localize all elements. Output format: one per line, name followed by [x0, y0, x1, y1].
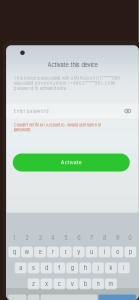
button[interactable]: 0 — [124, 233, 137, 242]
staticText: 6 — [77, 235, 80, 241]
staticText: 2 — [26, 235, 29, 241]
staticText: t — [65, 248, 67, 255]
button[interactable]: 6 — [72, 233, 85, 242]
button[interactable]: i — [99, 246, 110, 257]
staticText: f — [58, 264, 60, 271]
staticText: 4 — [51, 235, 55, 241]
staticText: b — [84, 280, 87, 287]
staticText: Couldn't verify Mi Account ID. Invalid u… — [14, 122, 102, 132]
button[interactable]: c — [53, 278, 65, 289]
button[interactable]: p — [124, 246, 136, 257]
staticText: q — [13, 248, 16, 255]
button[interactable]: h — [79, 262, 91, 273]
staticText: c — [58, 280, 61, 287]
button[interactable]: s — [28, 262, 39, 273]
button[interactable]: o — [111, 246, 123, 257]
button[interactable]: v — [66, 278, 78, 289]
staticText: v — [71, 280, 74, 287]
button[interactable]: 2 — [21, 233, 33, 242]
button[interactable]: m — [105, 278, 117, 289]
staticText: 9 — [116, 235, 119, 241]
button[interactable]: x — [41, 278, 52, 289]
button[interactable]: n — [92, 278, 104, 289]
staticText: 8 — [103, 235, 106, 241]
staticText: k — [109, 264, 112, 271]
button[interactable]: l — [118, 262, 130, 273]
button[interactable]: Done — [99, 294, 136, 300]
staticText: 1 — [13, 235, 15, 241]
staticText: Activate this device — [47, 61, 97, 68]
staticText: Enter password — [14, 108, 49, 114]
staticText: a — [19, 264, 22, 271]
staticText: n — [96, 280, 99, 287]
staticText: e — [38, 248, 41, 255]
staticText: z — [32, 280, 35, 287]
staticText: g — [71, 264, 74, 271]
staticText: Activate — [61, 159, 82, 165]
button[interactable]: 8 — [98, 233, 111, 242]
staticText: h — [84, 264, 87, 271]
staticText: s — [32, 264, 35, 271]
button[interactable]: z — [28, 278, 39, 289]
staticText: 0 — [128, 235, 132, 241]
staticText: p — [129, 248, 132, 255]
staticText: This device is associated with a Mi Acco… — [14, 75, 122, 91]
button[interactable]: e — [34, 246, 46, 257]
button[interactable]: 7 — [85, 233, 98, 242]
button[interactable]: 5 — [59, 233, 72, 242]
button[interactable]: w — [21, 246, 33, 257]
staticText: r — [52, 248, 54, 255]
button[interactable]: f — [53, 262, 65, 273]
staticText: i — [104, 248, 105, 255]
button[interactable]: 1 — [8, 233, 21, 242]
staticText: 3 — [38, 235, 41, 241]
staticText: o — [116, 248, 119, 255]
staticText: 5 — [64, 235, 67, 241]
button[interactable]: y — [73, 246, 84, 257]
button[interactable]: d — [41, 262, 52, 273]
staticText: y — [77, 248, 80, 255]
staticText: l — [123, 264, 124, 271]
staticText: m — [108, 280, 113, 287]
staticText: 7 — [90, 235, 93, 241]
staticText: u — [90, 248, 93, 255]
button[interactable]: a — [15, 262, 26, 273]
button[interactable]: t — [60, 246, 72, 257]
button[interactable]: 3 — [33, 233, 46, 242]
button[interactable]: Symbols — [8, 294, 26, 300]
button[interactable]: k — [105, 262, 117, 273]
button[interactable]: Space — [41, 294, 97, 300]
button[interactable]: g — [66, 262, 78, 273]
button[interactable]: b — [79, 278, 91, 289]
button[interactable]: 4 — [46, 233, 59, 242]
button[interactable]: Show password — [122, 105, 134, 117]
button[interactable]: Emoji — [28, 294, 39, 300]
button[interactable]: 9 — [111, 233, 124, 242]
button[interactable]: Activate — [13, 153, 130, 171]
button[interactable]: r — [47, 246, 59, 257]
button[interactable]: q — [8, 246, 20, 257]
button[interactable]: j — [92, 262, 104, 273]
staticText: d — [45, 264, 48, 271]
staticText: w — [25, 248, 30, 255]
staticText: x — [45, 280, 48, 287]
button[interactable]: u — [86, 246, 97, 257]
